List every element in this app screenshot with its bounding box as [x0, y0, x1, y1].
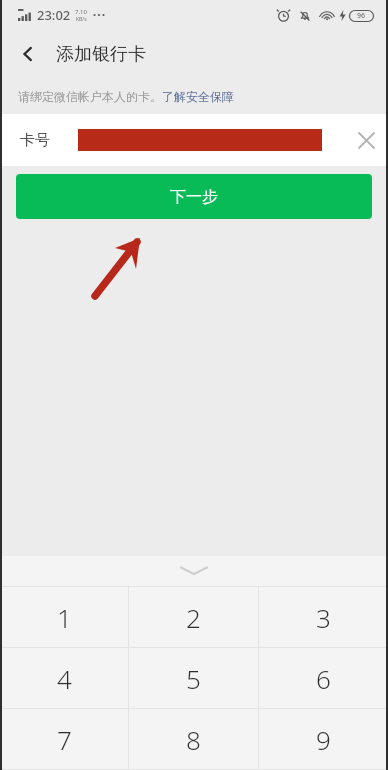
button[interactable]: 7 — [0, 709, 128, 769]
staticText: 卡号 — [20, 131, 50, 150]
staticText: 5 — [186, 661, 201, 696]
staticText: 请绑定微信帐户本人的卡。 — [18, 89, 162, 104]
button[interactable]: Back — [8, 34, 48, 74]
button[interactable]: 5 — [129, 648, 258, 708]
staticText: 6 — [316, 661, 331, 696]
staticText: 8 — [186, 722, 201, 757]
staticText: 96 — [357, 11, 366, 21]
button[interactable]: 2 — [129, 587, 258, 647]
staticText: 9 — [316, 722, 331, 757]
staticText: 4 — [57, 661, 72, 696]
staticText: 23:02 — [37, 6, 71, 24]
button[interactable]: 1 — [0, 587, 128, 647]
button[interactable]: 9 — [259, 709, 388, 769]
button[interactable]: 4 — [0, 648, 128, 708]
button[interactable]: 卡号 — [0, 114, 388, 166]
staticText: 了解安全保障 — [162, 89, 234, 104]
button[interactable]: 了解安全保障 — [162, 89, 234, 104]
staticText: 下一步 — [170, 187, 218, 207]
staticText: KB/s — [76, 16, 87, 23]
staticText: 2 — [186, 600, 201, 635]
button[interactable]: 6 — [259, 648, 388, 708]
staticText: 3 — [316, 600, 331, 635]
button[interactable]: Hide keyboard — [0, 556, 388, 586]
staticText: 7 — [57, 722, 72, 757]
staticText: 1 — [57, 600, 72, 635]
button[interactable]: Clear — [344, 118, 388, 162]
staticText: 7.10 — [75, 8, 87, 16]
staticText: 添加银行卡 — [56, 43, 146, 66]
button[interactable]: 8 — [129, 709, 258, 769]
button[interactable]: 3 — [259, 587, 388, 647]
button[interactable]: 下一步 — [16, 174, 372, 219]
